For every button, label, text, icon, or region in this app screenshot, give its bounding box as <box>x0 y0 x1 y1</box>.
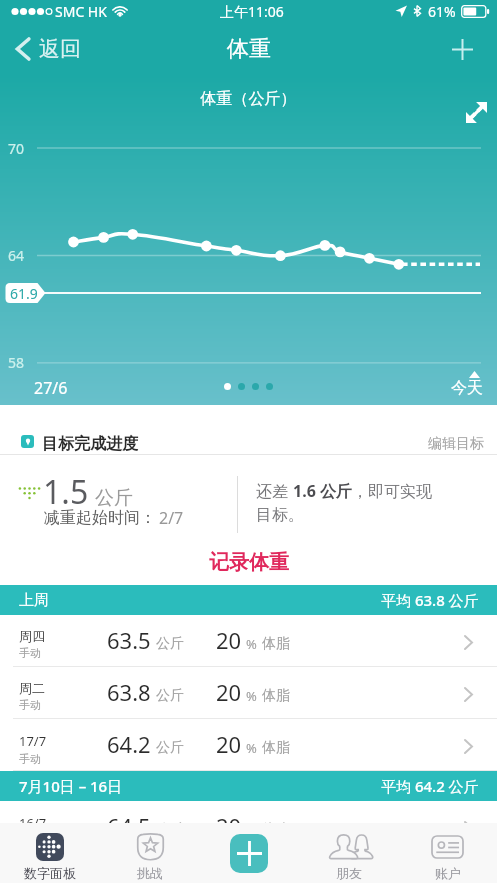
staticText: 61.9 <box>10 284 38 303</box>
staticText: 周二 <box>19 680 45 696</box>
staticText: 朋友 <box>336 865 362 881</box>
staticText: 体脂 <box>262 635 290 653</box>
staticText: ，即可实现 <box>352 482 432 502</box>
button[interactable]: 数字面板 <box>0 823 100 883</box>
staticText: 手动 <box>19 698 41 712</box>
staticText: 上周 <box>19 591 49 610</box>
button[interactable]: 返回 <box>0 28 95 70</box>
staticText: 手动 <box>19 646 41 660</box>
button[interactable]: Expand chart <box>462 98 491 127</box>
button[interactable]: 周四 <box>0 615 497 667</box>
staticText: 61% <box>428 2 456 21</box>
button[interactable]: 朋友 <box>299 823 398 883</box>
staticText: 上午11:06 <box>220 2 284 21</box>
staticText: % <box>246 635 257 653</box>
staticText: 目标完成进度 <box>42 434 138 454</box>
staticText: 7月10日 – 16日 <box>19 776 123 796</box>
staticText: 体重（公斤） <box>0 89 497 109</box>
staticText: 20 <box>216 677 242 707</box>
staticText: 体重 <box>227 35 271 63</box>
staticText: 公斤 <box>156 739 184 757</box>
staticText: % <box>246 821 257 839</box>
staticText: 1.6 公斤 <box>293 480 352 502</box>
staticText: 记录体重 <box>209 550 289 575</box>
button[interactable]: 17/7 <box>0 719 497 771</box>
staticText: 1.5 <box>43 470 89 514</box>
staticText: 今天 <box>451 378 483 398</box>
staticText: 20 <box>216 625 242 655</box>
staticText: 64.2 <box>107 729 151 759</box>
button[interactable]: Add weight <box>438 29 497 70</box>
staticText: 公斤 <box>95 486 133 510</box>
staticText: 还差 <box>256 480 293 502</box>
button[interactable]: 挑战 <box>100 823 200 883</box>
staticText: 体脂 <box>262 739 290 757</box>
button[interactable]: 账户 <box>398 823 497 883</box>
staticText: 公斤 <box>156 821 184 839</box>
staticText: 16/7 <box>19 814 47 832</box>
staticText: 2/7 <box>159 507 184 529</box>
button[interactable]: 记录体重 <box>0 540 497 585</box>
staticText: 63.5 <box>107 625 151 655</box>
staticText: 公斤 <box>156 635 184 653</box>
staticText: 20 <box>216 811 242 841</box>
staticText: 周四 <box>19 628 45 644</box>
staticText: 公斤 <box>156 687 184 705</box>
staticText: 20 <box>216 729 242 759</box>
staticText: 70 <box>8 139 25 158</box>
staticText: 手动 <box>19 834 41 848</box>
staticText: 27/6 <box>34 377 68 399</box>
staticText: 账户 <box>435 865 461 881</box>
staticText: 58 <box>8 353 25 372</box>
staticText: SMC HK <box>55 2 107 21</box>
button[interactable]: Add entry <box>230 834 268 873</box>
staticText: 平均 63.8 公斤 <box>381 590 479 610</box>
staticText: % <box>246 687 257 705</box>
staticText: 64.5 <box>107 811 151 841</box>
staticText: 数字面板 <box>24 865 76 881</box>
staticText: % <box>246 739 257 757</box>
staticText: 手动 <box>19 752 41 766</box>
staticText: 返回 <box>39 36 81 62</box>
button[interactable]: 16/7 <box>0 801 497 853</box>
staticText: 挑战 <box>137 865 163 881</box>
staticText: 体脂 <box>262 687 290 705</box>
staticText: 体脂 <box>262 821 290 839</box>
staticText: 平均 64.2 公斤 <box>381 776 479 796</box>
staticText: 减重起始时间： <box>44 508 156 528</box>
button[interactable]: 周二 <box>0 667 497 719</box>
staticText: 17/7 <box>19 732 47 750</box>
staticText: 目标。 <box>256 505 304 525</box>
staticText: 63.8 <box>107 677 151 707</box>
button[interactable]: 编辑目标 <box>428 435 484 453</box>
staticText: 64 <box>8 246 25 265</box>
